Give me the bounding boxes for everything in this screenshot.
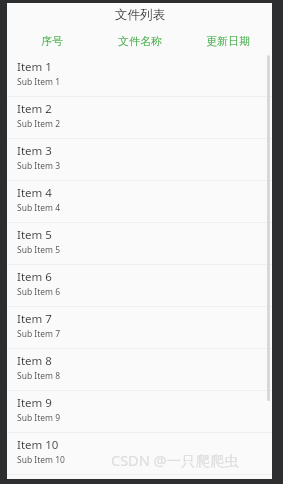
staticText: Item 5	[17, 227, 52, 243]
button[interactable]: Item 4	[7, 181, 272, 223]
staticText: Item 2	[17, 101, 52, 117]
staticText: Item 10	[17, 437, 59, 453]
staticText: Item 4	[17, 185, 52, 201]
staticText: Sub Item 8	[17, 370, 61, 382]
staticText: 文件名称	[118, 34, 162, 48]
button[interactable]: 序号	[7, 26, 96, 55]
staticText: Sub Item 7	[17, 328, 61, 340]
staticText: 更新日期	[206, 34, 250, 48]
staticText: 文件列表	[115, 7, 165, 23]
staticText: Sub Item 2	[17, 118, 61, 130]
staticText: Sub Item 5	[17, 244, 61, 256]
button[interactable]: Item 8	[7, 349, 272, 391]
staticText: Sub Item 3	[17, 160, 61, 172]
button[interactable]: Item 7	[7, 307, 272, 349]
staticText: Sub Item 6	[17, 286, 61, 298]
staticText: Item 9	[17, 395, 52, 411]
staticText: Sub Item 1	[17, 76, 61, 88]
button[interactable]: Item 10	[7, 433, 272, 475]
button[interactable]: 文件名称	[96, 26, 184, 55]
staticText: Sub Item 4	[17, 202, 61, 214]
button[interactable]: Item 1	[7, 55, 272, 97]
staticText: Item 8	[17, 353, 52, 369]
staticText: Item 7	[17, 311, 52, 327]
staticText: Item 1	[17, 59, 52, 75]
button[interactable]: Item 6	[7, 265, 272, 307]
staticText: Item 3	[17, 143, 52, 159]
button[interactable]: Item 3	[7, 139, 272, 181]
staticText: Item 6	[17, 269, 52, 285]
button[interactable]: 更新日期	[184, 26, 272, 55]
staticText: Sub Item 10	[17, 454, 65, 466]
staticText: CSDN @一只爬爬虫	[111, 450, 240, 470]
staticText: 序号	[41, 34, 63, 48]
button[interactable]: Item 9	[7, 391, 272, 433]
button[interactable]: Item 2	[7, 97, 272, 139]
button[interactable]: Item 5	[7, 223, 272, 265]
staticText: Sub Item 9	[17, 412, 61, 424]
